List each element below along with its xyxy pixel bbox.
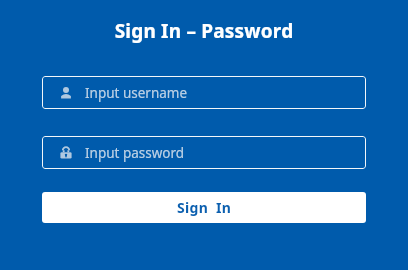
- staticText: Input password: [85, 144, 185, 162]
- button[interactable]: Input username: [42, 76, 366, 109]
- staticText: Sign In – Password: [0, 18, 408, 44]
- staticText: Sign In: [177, 198, 232, 217]
- button[interactable]: Sign In: [42, 192, 366, 223]
- button[interactable]: Input password: [42, 136, 366, 169]
- staticText: Input username: [85, 84, 188, 102]
